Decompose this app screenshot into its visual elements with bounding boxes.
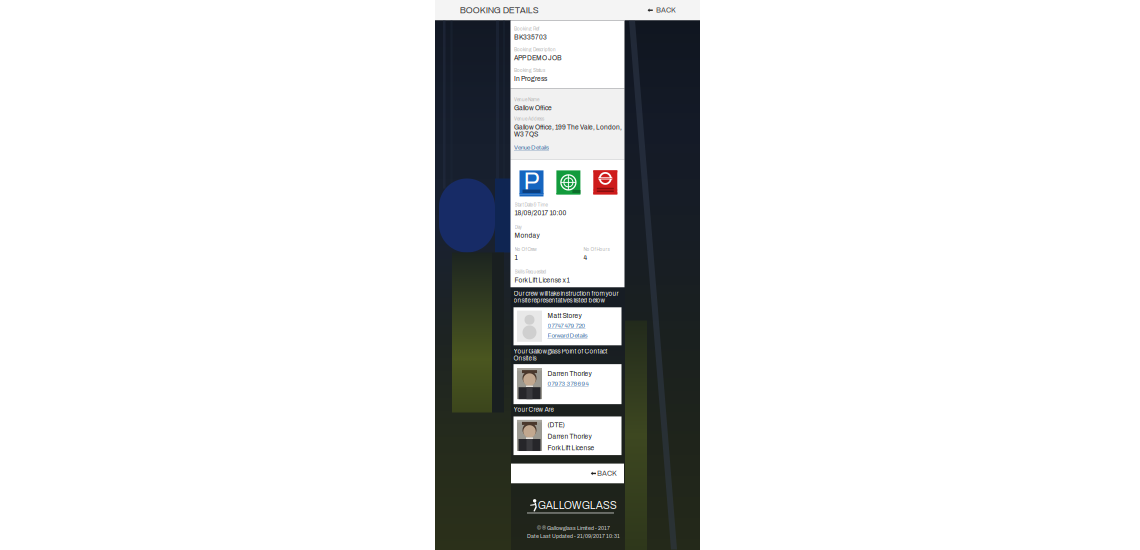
staticText: 07747 479 720: [547, 322, 585, 329]
staticText: BACK: [656, 6, 676, 14]
staticText: APP DEMO JOB: [514, 54, 562, 62]
staticText: Monday: [514, 232, 539, 239]
staticText: Venue Details: [514, 144, 549, 151]
button[interactable]: BACK: [642, 1, 676, 19]
staticText: Gallow Office: [514, 105, 552, 112]
staticText: Your Gallowglass Point of Contact Onsite…: [513, 348, 607, 362]
staticText: Booking Description: [514, 47, 556, 52]
staticText: Forward Details: [547, 332, 587, 339]
staticText: 1: [514, 254, 517, 261]
button[interactable]: 07747 479 720: [547, 322, 585, 329]
staticText: P: [523, 168, 539, 194]
staticText: 18/09/2017 10:00: [514, 210, 566, 217]
staticText: © ® Gallowglass Limited - 2017: [537, 525, 610, 531]
staticText: Darren Thorley: [547, 433, 591, 440]
staticText: Venue Name: [514, 97, 539, 102]
staticText: Fork Lift License x 1: [514, 277, 569, 284]
staticText: 07973 378694: [547, 380, 588, 387]
staticText: Our crew will take instruction from your…: [513, 290, 618, 304]
staticText: BK335703: [514, 34, 547, 41]
staticText: Day: [514, 225, 521, 230]
staticText: Date Last Updated - 21/09/2017 10:31: [527, 533, 620, 539]
staticText: Fork Lift License: [547, 444, 594, 452]
staticText: Your Crew Are: [513, 406, 553, 413]
button[interactable]: Forward Details: [547, 332, 587, 339]
staticText: BOOKING DETAILS: [460, 5, 539, 15]
staticText: 4: [583, 254, 587, 261]
staticText: No Of Crew: [514, 247, 536, 252]
button[interactable]: BACK: [511, 464, 624, 483]
staticText: Booking Ref: [514, 26, 539, 31]
staticText: Matt Storey: [547, 312, 581, 319]
staticText: Start Date & Time: [514, 202, 547, 207]
staticText: GALLOWGLASS: [538, 500, 617, 511]
staticText: No Of Hours: [583, 247, 609, 252]
staticText: BACK: [597, 470, 617, 477]
staticText: In Progress: [514, 75, 547, 82]
staticText: (DTE): [547, 421, 564, 429]
staticText: Skills Requested: [514, 269, 546, 274]
button[interactable]: Venue Details: [514, 143, 549, 151]
staticText: Gallow Office, 199 The Vale, London, W3 …: [514, 124, 622, 138]
button[interactable]: 07973 378694: [547, 380, 588, 387]
staticText: Booking Status: [514, 68, 545, 73]
staticText: Venue Address: [514, 116, 544, 121]
staticText: Darren Thorley: [547, 370, 591, 377]
